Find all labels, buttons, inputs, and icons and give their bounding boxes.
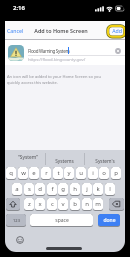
staticText: Add to Home Screen	[34, 27, 88, 34]
button[interactable]: Add	[109, 26, 125, 35]
staticText: v	[61, 200, 65, 208]
button[interactable]: c	[47, 198, 57, 211]
staticText: z	[28, 200, 31, 208]
staticText: u	[79, 169, 83, 177]
staticText: g	[61, 185, 65, 193]
staticText: 123	[13, 218, 20, 223]
staticText: done	[103, 217, 116, 224]
staticText: “System”	[18, 154, 38, 161]
button[interactable]: a	[12, 183, 22, 196]
button[interactable]: q	[6, 167, 16, 180]
staticText: Flood Warning System	[28, 48, 70, 54]
button[interactable]: n	[82, 198, 92, 211]
button[interactable]	[115, 48, 121, 54]
staticText: y	[67, 169, 71, 177]
staticText: k	[96, 185, 100, 193]
staticText: t	[57, 169, 60, 177]
staticText: q	[9, 169, 13, 177]
staticText: b	[73, 200, 77, 208]
button[interactable]: r	[41, 167, 51, 180]
button[interactable]: space	[30, 214, 93, 227]
button[interactable]: m	[93, 198, 103, 211]
staticText: Cancel	[7, 27, 24, 34]
button[interactable]: g	[58, 183, 68, 196]
staticText: j	[86, 185, 88, 193]
button[interactable]: z	[24, 198, 34, 211]
button[interactable]: o	[99, 167, 109, 180]
staticText: e	[32, 169, 36, 177]
button[interactable]: p	[111, 167, 121, 180]
staticText: i	[92, 169, 94, 177]
button[interactable]: done	[98, 214, 120, 227]
staticText: w	[21, 169, 26, 177]
staticText: System's	[95, 158, 115, 165]
button[interactable]: h	[70, 183, 80, 196]
staticText: a	[15, 185, 19, 193]
staticText: r	[45, 169, 48, 177]
button[interactable]	[16, 236, 24, 244]
staticText: h	[73, 185, 77, 193]
button[interactable]: u	[76, 167, 86, 180]
button[interactable]	[6, 198, 20, 211]
button[interactable]: 123	[6, 214, 26, 227]
button[interactable]: “System”	[9, 152, 46, 162]
staticText: An icon will be added to your Home Scree…	[7, 74, 107, 79]
staticText: n	[85, 200, 89, 208]
button[interactable]: j	[82, 183, 92, 196]
button[interactable]: x	[35, 198, 45, 211]
button[interactable]: w	[18, 167, 28, 180]
staticText: https://flood.kingcounty.gov/	[28, 57, 86, 63]
button[interactable]	[109, 198, 124, 211]
staticText: c	[51, 200, 54, 208]
staticText: Systems	[55, 158, 74, 165]
button[interactable]: y	[64, 167, 74, 180]
button[interactable]: v	[58, 198, 68, 211]
button[interactable]: Systems	[46, 156, 83, 166]
button[interactable]: t	[53, 167, 63, 180]
staticText: space	[55, 217, 69, 224]
button[interactable]: i	[88, 167, 98, 180]
button[interactable]: s	[24, 183, 34, 196]
staticText: f	[51, 185, 54, 193]
button[interactable]: e	[29, 167, 39, 180]
staticText: d	[38, 185, 42, 193]
staticText: l	[109, 185, 111, 193]
button[interactable]: Cancel	[7, 25, 27, 35]
staticText: x	[38, 200, 42, 208]
button[interactable]: d	[35, 183, 45, 196]
staticText: m	[95, 200, 101, 208]
button[interactable]: System's	[86, 156, 123, 166]
staticText: p	[114, 169, 118, 177]
staticText: o	[102, 169, 106, 177]
button[interactable]: b	[70, 198, 80, 211]
button[interactable]: k	[93, 183, 103, 196]
staticText: s	[28, 185, 31, 193]
button[interactable]: f	[47, 183, 57, 196]
staticText: Add	[112, 27, 122, 34]
staticText: 2:16	[13, 4, 25, 12]
button[interactable]: l	[105, 183, 115, 196]
staticText: quickly access this website.	[7, 80, 58, 85]
